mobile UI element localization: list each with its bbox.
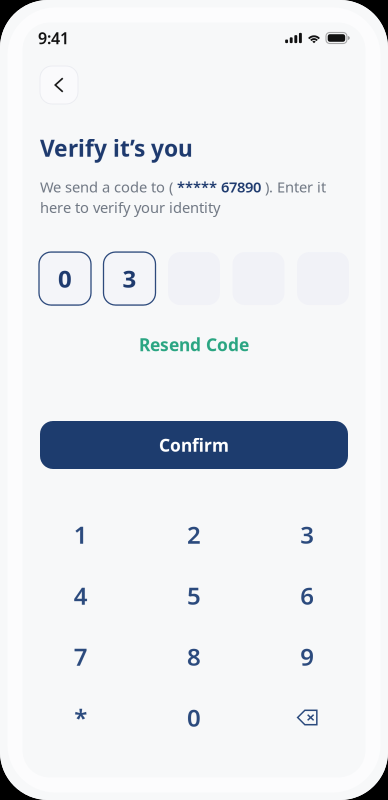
button[interactable]: * xyxy=(24,687,137,748)
staticText: We send a code to ( xyxy=(40,177,177,197)
staticText: 9:41 xyxy=(38,27,69,49)
staticText: 6 xyxy=(300,580,314,611)
staticText: 8 xyxy=(187,641,201,672)
staticText: ***** 67890 xyxy=(177,177,261,197)
button[interactable]: 9 xyxy=(251,626,364,687)
button[interactable]: Resend Code xyxy=(127,328,261,361)
staticText: 0 xyxy=(58,263,72,294)
staticText: ). Enter it xyxy=(261,177,326,197)
button[interactable]: Code digit 3 xyxy=(103,252,155,305)
staticText: 3 xyxy=(300,519,314,550)
button[interactable]: 0 xyxy=(137,687,251,748)
button[interactable]: 7 xyxy=(24,626,137,687)
staticText: * xyxy=(74,702,87,733)
staticText: 3 xyxy=(122,263,136,294)
staticText: Resend Code xyxy=(139,333,249,356)
staticText: 9 xyxy=(300,641,314,672)
button[interactable]: 6 xyxy=(251,565,364,626)
button[interactable]: 4 xyxy=(24,565,137,626)
button[interactable]: 8 xyxy=(137,626,251,687)
staticText: 5 xyxy=(187,580,201,611)
button[interactable]: Confirm xyxy=(40,421,348,469)
staticText: Verify it’s you xyxy=(40,133,193,163)
staticText: 2 xyxy=(187,519,201,550)
button[interactable]: 1 xyxy=(24,504,137,565)
button[interactable]: Back xyxy=(40,66,78,104)
staticText: 4 xyxy=(74,580,88,611)
button[interactable]: 5 xyxy=(137,565,251,626)
button[interactable]: Delete xyxy=(251,687,364,748)
staticText: here to verify your identity xyxy=(40,198,220,217)
staticText: 7 xyxy=(74,641,88,672)
button[interactable]: 2 xyxy=(137,504,251,565)
button[interactable]: 3 xyxy=(251,504,364,565)
button[interactable]: Code digit 0 xyxy=(39,252,91,305)
staticText: 1 xyxy=(74,519,88,550)
staticText: 0 xyxy=(187,702,201,733)
staticText: Confirm xyxy=(159,433,229,456)
